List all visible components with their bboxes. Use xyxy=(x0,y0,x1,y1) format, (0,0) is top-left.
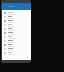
button[interactable] xyxy=(2,51,31,55)
button[interactable] xyxy=(2,23,31,27)
button[interactable] xyxy=(2,15,31,19)
button[interactable] xyxy=(2,19,31,23)
button[interactable] xyxy=(2,11,31,15)
button[interactable] xyxy=(2,27,31,31)
button[interactable] xyxy=(2,39,31,43)
button[interactable] xyxy=(2,47,31,51)
button[interactable] xyxy=(2,31,31,35)
button[interactable] xyxy=(2,35,31,39)
button[interactable] xyxy=(2,43,31,47)
